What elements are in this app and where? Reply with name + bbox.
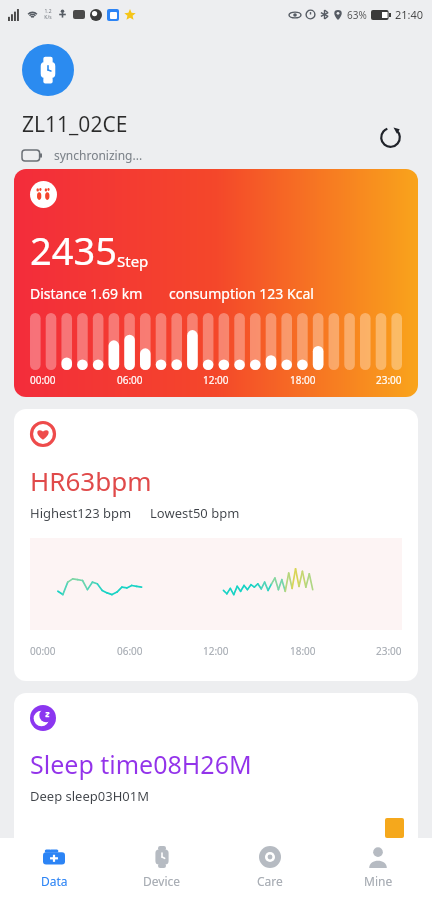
staticText: Device <box>143 873 181 889</box>
button[interactable]: Refresh <box>370 117 410 157</box>
staticText: Lowest50 bpm <box>150 504 240 522</box>
button[interactable]: 2435 <box>14 169 418 397</box>
staticText: 18:00 <box>290 644 316 658</box>
staticText: 23:00 <box>376 373 402 387</box>
button[interactable]: Sleep time08H26M <box>14 693 418 883</box>
staticText: 18:00 <box>290 373 316 387</box>
staticText: Highest123 bpm <box>30 504 132 522</box>
staticText: Distance 1.69 km <box>30 284 143 303</box>
staticText: HR63bpm <box>30 463 152 498</box>
staticText: synchronizing... <box>54 147 143 163</box>
staticText: 63% <box>347 8 367 22</box>
button[interactable]: Data <box>0 838 108 900</box>
staticText: 00:00 <box>30 373 56 387</box>
staticText: 12:00 <box>203 373 229 387</box>
staticText: 1.2 K/s <box>44 8 52 21</box>
staticText: 2435 <box>30 224 117 276</box>
staticText: 12:00 <box>203 644 229 658</box>
staticText: Care <box>257 873 283 889</box>
button[interactable]: HR63bpm <box>14 409 418 681</box>
button[interactable]: Mine <box>324 838 432 900</box>
staticText: 21:40 <box>395 7 424 22</box>
staticText: 06:00 <box>117 373 143 387</box>
button[interactable]: Device <box>108 838 216 900</box>
staticText: 06:00 <box>117 644 143 658</box>
staticText: 23:00 <box>376 644 402 658</box>
staticText: Data <box>41 873 68 889</box>
staticText: Mine <box>364 873 393 889</box>
staticText: Sleep time08H26M <box>30 747 252 781</box>
staticText: consumption 123 Kcal <box>169 284 314 303</box>
staticText: Step <box>117 251 149 271</box>
button[interactable]: Device <box>22 44 74 96</box>
button[interactable]: Care <box>216 838 324 900</box>
staticText: 00:00 <box>30 644 56 658</box>
staticText: Deep sleep03H01M <box>30 787 149 805</box>
staticText: ZL11_02CE <box>22 110 128 139</box>
